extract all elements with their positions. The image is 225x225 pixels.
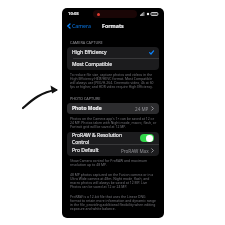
staticText: Show Camera control for ProRAW and maxim… bbox=[70, 158, 157, 167]
staticText: 24 MP bbox=[135, 106, 149, 112]
staticText: Photos on the Camera app's 1× can be sav… bbox=[70, 116, 157, 129]
button[interactable]: Camera bbox=[66, 20, 92, 31]
staticText: 48 MP photos captured on the Fusion came… bbox=[70, 172, 157, 189]
button[interactable]: Photo Mode bbox=[67, 103, 159, 114]
staticText: Most Compatible bbox=[72, 61, 154, 68]
staticText: ProRAW Max bbox=[121, 148, 149, 154]
button[interactable]: Most Compatible bbox=[67, 59, 159, 70]
other: Toggle ProRAW & Resolution Control bbox=[140, 134, 154, 142]
button[interactable]: ProRAW & Resolution Control bbox=[67, 132, 159, 144]
staticText: Formats bbox=[102, 22, 124, 29]
staticText: PHOTO CAPTURE bbox=[70, 96, 101, 101]
staticText: 10:03 bbox=[68, 11, 79, 17]
button[interactable]: Pro Default bbox=[67, 145, 159, 156]
staticText: CAMERA CAPTURE bbox=[70, 40, 103, 45]
staticText: Photo Mode bbox=[72, 105, 135, 112]
staticText: ProRAW & Resolution Control bbox=[72, 132, 140, 144]
staticText: To reduce file size, capture photos and … bbox=[70, 72, 157, 89]
staticText: Camera bbox=[72, 22, 91, 29]
staticText: ProRAW is a 12-bit file that uses the Li… bbox=[70, 194, 157, 211]
staticText: Pro Default bbox=[72, 147, 121, 154]
staticText: High Efficiency bbox=[72, 49, 149, 56]
button[interactable]: High Efficiency bbox=[67, 47, 159, 58]
